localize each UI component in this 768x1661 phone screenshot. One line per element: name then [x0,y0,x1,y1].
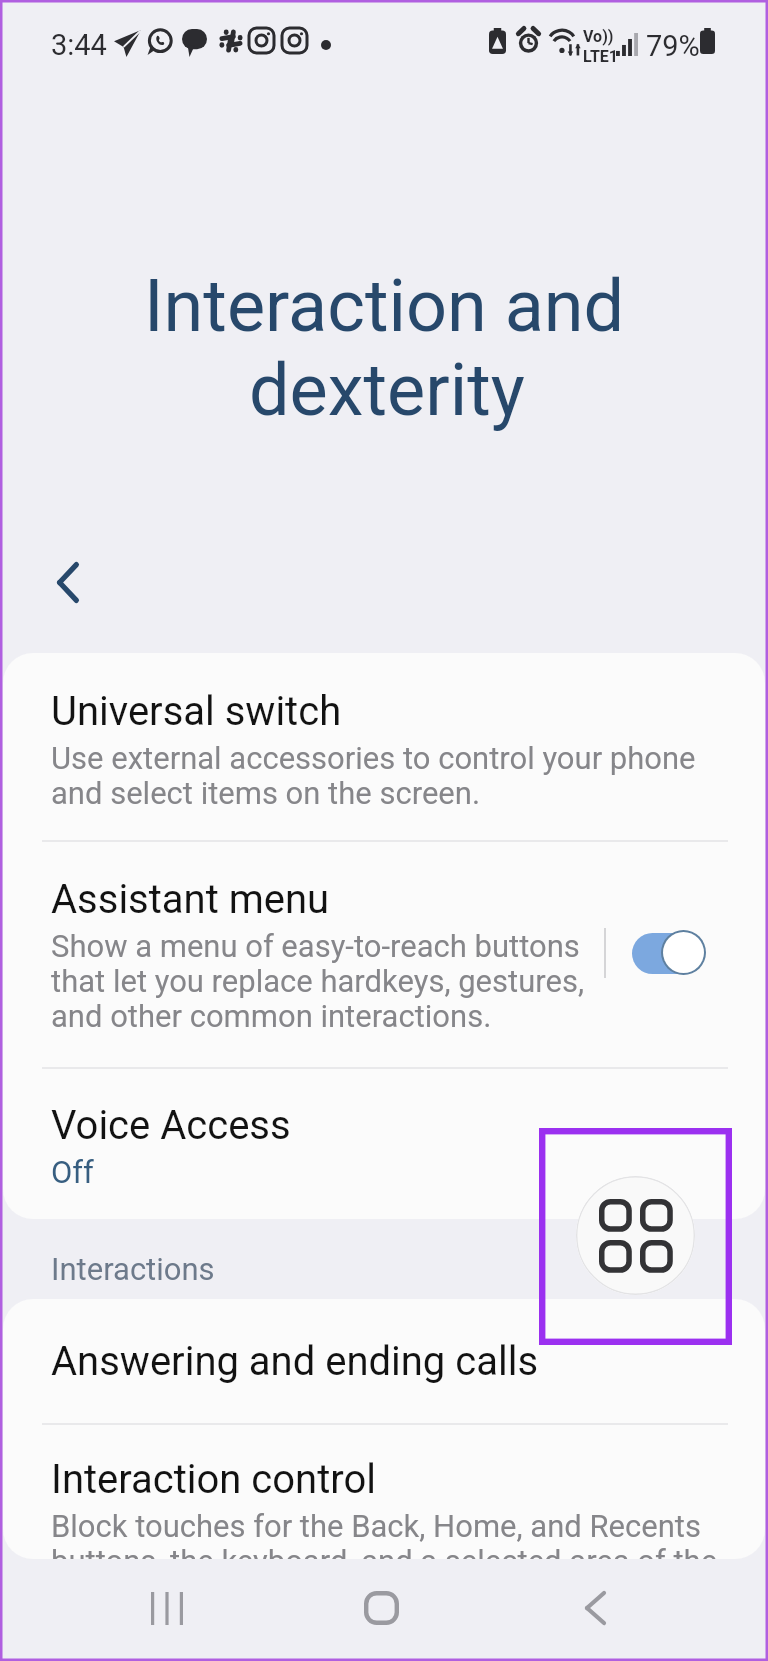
button[interactable]: Home [333,1557,429,1659]
staticText: LTE1 [583,47,618,66]
button[interactable]: Recent apps [119,1557,215,1659]
staticText: Use external accessories to control your… [51,740,741,811]
button[interactable]: Accessibility shortcuts [576,1176,695,1295]
button[interactable]: Interaction control [0,1423,768,1561]
button[interactable]: Universal switch [0,653,768,841]
staticText: Assistant menu [51,876,330,923]
button[interactable]: Answering and ending calls [0,1303,768,1423]
staticText: Block touches for the Back, Home, and Re… [51,1508,741,1579]
staticText: Off [51,1154,94,1190]
button[interactable]: Back [547,1557,643,1659]
staticText: Show a menu of easy-to-reach buttons tha… [51,928,607,1034]
staticText: Interactions [51,1251,215,1287]
button[interactable]: Assistant menu toggle [632,930,706,976]
staticText: 79% [646,29,700,63]
staticText: Universal switch [51,688,342,735]
staticText: 3:44 [51,28,107,62]
staticText: Vo)) [583,27,614,46]
staticText: Answering and ending calls [51,1338,539,1385]
button[interactable]: Voice Access [0,1067,768,1219]
button[interactable]: Navigate up [24,540,112,624]
staticText: Voice Access [51,1102,291,1149]
button[interactable]: Assistant menu [0,841,768,1067]
staticText: Interaction control [51,1456,376,1503]
staticText: dexterity [249,348,525,432]
staticText: Interaction and [144,264,625,348]
